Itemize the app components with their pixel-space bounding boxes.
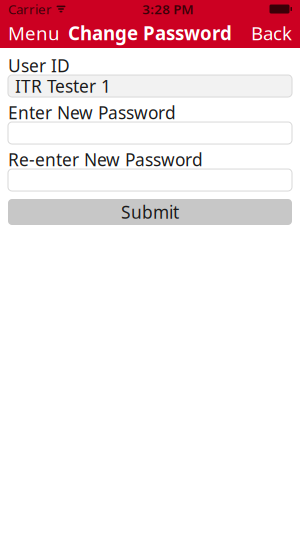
button[interactable]: Submit [8, 199, 292, 225]
button[interactable]: Menu [0, 18, 68, 48]
staticText: Back [251, 21, 292, 45]
staticText: Submit [121, 200, 179, 223]
button[interactable]: Back [243, 18, 300, 48]
staticText: Enter New Password [8, 101, 176, 124]
staticText: Change Password [68, 21, 232, 45]
staticText: Re-enter New Password [8, 148, 203, 171]
staticText: Menu [8, 21, 60, 45]
staticText: 3:28 PM [142, 0, 193, 18]
staticText: ITR Tester 1 [15, 74, 111, 97]
staticText: Carrier [8, 0, 52, 18]
staticText: User ID [8, 54, 70, 77]
